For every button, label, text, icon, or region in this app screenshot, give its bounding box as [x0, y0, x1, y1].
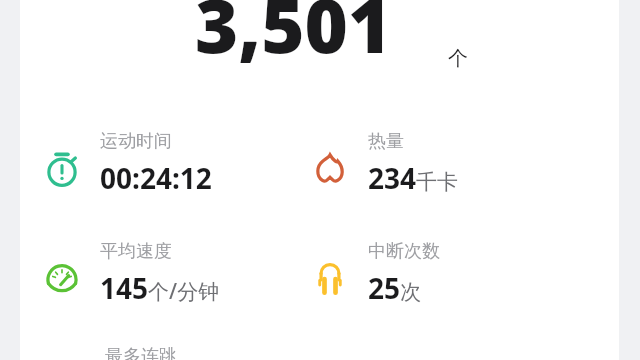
staticText: 个: [448, 46, 468, 71]
button[interactable]: 运动时间: [35, 128, 303, 224]
staticText: 25次: [368, 269, 422, 307]
staticText: 热量: [368, 130, 404, 153]
staticText: 3,501: [195, 0, 392, 75]
button[interactable]: 中断次数: [303, 238, 571, 334]
staticText: 145个/分钟: [100, 269, 220, 307]
button[interactable]: 热量: [303, 128, 571, 224]
staticText: 运动时间: [100, 130, 172, 153]
staticText: 平均速度: [100, 240, 172, 263]
staticText: 中断次数: [368, 240, 440, 263]
staticText: 234千卡: [368, 159, 459, 197]
staticText: 00:24:12: [100, 159, 212, 197]
staticText: 最多连跳: [105, 345, 177, 360]
button[interactable]: 平均速度: [35, 238, 303, 334]
